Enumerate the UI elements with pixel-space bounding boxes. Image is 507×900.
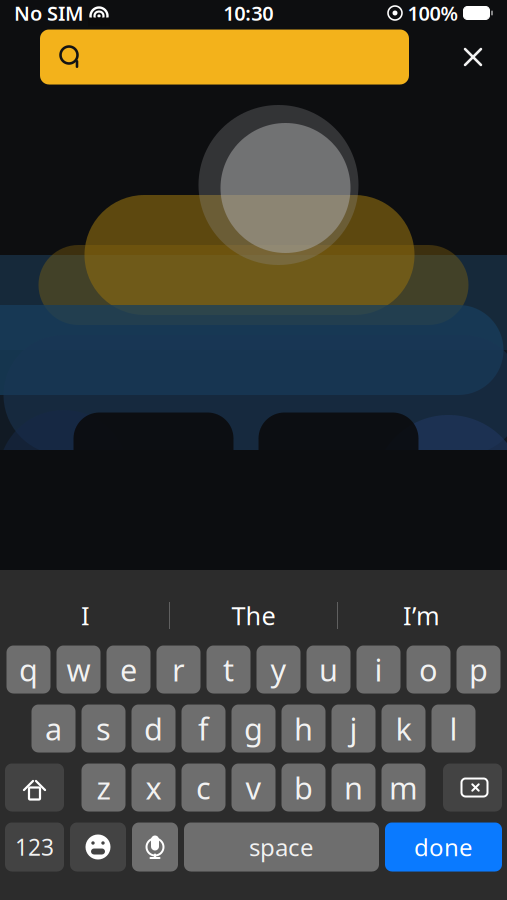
staticText: j	[349, 708, 357, 749]
staticText: d	[144, 708, 163, 749]
button[interactable]: u	[306, 645, 350, 693]
button[interactable]: 123	[5, 822, 64, 871]
staticText: z	[96, 767, 110, 808]
staticText: y	[270, 649, 286, 690]
button[interactable]: l	[431, 704, 475, 752]
staticText: 123	[15, 832, 54, 862]
button[interactable]: w	[56, 645, 100, 693]
button[interactable]: s	[81, 704, 125, 752]
button[interactable]: Dictation	[132, 822, 178, 871]
button[interactable]: q	[6, 645, 50, 693]
staticText: a	[45, 708, 62, 749]
staticText: h	[294, 708, 313, 749]
staticText: p	[469, 649, 488, 690]
staticText: I	[81, 599, 90, 632]
staticText: u	[319, 649, 338, 690]
staticText: No SIM	[14, 0, 84, 26]
staticText: f	[198, 708, 209, 749]
button[interactable]: k	[381, 704, 425, 752]
button[interactable]: f	[181, 704, 225, 752]
staticText: m	[389, 767, 418, 808]
staticText: g	[244, 708, 263, 749]
button[interactable]: a	[31, 704, 75, 752]
staticText: done	[414, 831, 473, 863]
button[interactable]: Emoji	[70, 822, 126, 871]
button[interactable]: e	[106, 645, 150, 693]
button[interactable]: r	[156, 645, 200, 693]
staticText: i	[374, 649, 382, 690]
button[interactable]: I’m	[338, 589, 505, 641]
button[interactable]: Shift	[5, 763, 64, 811]
button[interactable]: Delete	[443, 763, 502, 811]
button[interactable]: done	[385, 822, 502, 871]
staticText: I’m	[403, 599, 440, 632]
staticText: The	[231, 599, 275, 632]
staticText: v	[245, 767, 261, 808]
button[interactable]: z	[81, 763, 125, 811]
staticText: x	[145, 767, 161, 808]
staticText: o	[419, 649, 438, 690]
staticText: q	[19, 649, 38, 690]
staticText: e	[120, 649, 137, 690]
staticText: r	[172, 649, 185, 690]
button[interactable]: I	[2, 589, 169, 641]
button[interactable]: h	[281, 704, 325, 752]
staticText: k	[395, 708, 411, 749]
button[interactable]: m	[381, 763, 425, 811]
staticText: w	[66, 649, 90, 690]
staticText: l	[449, 708, 457, 749]
staticText: 10:30	[223, 0, 273, 26]
button[interactable]: y	[256, 645, 300, 693]
button[interactable]: c	[181, 763, 225, 811]
staticText: c	[196, 767, 211, 808]
staticText: b	[294, 767, 313, 808]
button[interactable]: The	[170, 589, 337, 641]
staticText: s	[96, 708, 111, 749]
button[interactable]: j	[331, 704, 375, 752]
staticText: 100%	[407, 0, 458, 26]
button[interactable]: t	[206, 645, 250, 693]
button[interactable]: n	[331, 763, 375, 811]
staticText: space	[249, 831, 314, 863]
button[interactable]: x	[131, 763, 175, 811]
staticText: t	[223, 649, 234, 690]
button[interactable]: i	[356, 645, 400, 693]
button[interactable]: b	[281, 763, 325, 811]
button[interactable]: o	[406, 645, 450, 693]
staticText: n	[344, 767, 363, 808]
button[interactable]: Close search	[445, 29, 501, 84]
button[interactable]: d	[131, 704, 175, 752]
button[interactable]: v	[231, 763, 275, 811]
button[interactable]: p	[456, 645, 500, 693]
button[interactable]: space	[184, 822, 379, 871]
button[interactable]: g	[231, 704, 275, 752]
button[interactable]	[40, 29, 409, 84]
